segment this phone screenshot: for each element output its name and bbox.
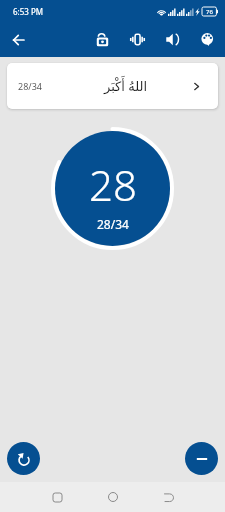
button[interactable]: Count xyxy=(51,127,174,250)
button[interactable]: Reset counter xyxy=(7,442,40,475)
button[interactable]: Back xyxy=(0,22,37,57)
button[interactable]: Theme colour xyxy=(190,22,225,57)
button[interactable]: Lock screen xyxy=(85,22,120,57)
staticText: 76 xyxy=(206,8,213,16)
staticText: اللهُ أَكْبَر xyxy=(104,77,148,95)
staticText: 28 xyxy=(89,156,137,213)
button[interactable]: Vibration xyxy=(120,22,155,57)
button[interactable]: Home xyxy=(85,482,141,512)
button[interactable]: Sound xyxy=(155,22,190,57)
staticText: 6:53 PM xyxy=(13,6,44,17)
staticText: 28/34 xyxy=(18,80,42,92)
button[interactable]: Recent apps xyxy=(29,482,85,512)
button[interactable]: Decrease count xyxy=(185,442,218,475)
staticText: 28/34 xyxy=(97,216,129,232)
button[interactable]: 28/34 xyxy=(7,63,218,109)
button[interactable]: Back xyxy=(141,482,197,512)
